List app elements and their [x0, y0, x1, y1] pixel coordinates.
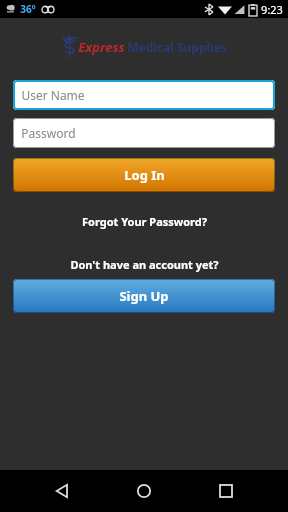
- staticText: Log In: [124, 166, 165, 184]
- button[interactable]: Sign Up: [13, 279, 275, 313]
- staticText: 9:23: [261, 2, 283, 17]
- button[interactable]: Home: [124, 471, 164, 511]
- button[interactable]: Recent apps: [206, 471, 246, 511]
- staticText: Password: [21, 125, 76, 141]
- button[interactable]: Log In: [13, 158, 275, 192]
- staticText: Sign Up: [119, 287, 169, 305]
- staticText: Express: [78, 38, 125, 56]
- staticText: 36°: [20, 2, 36, 16]
- staticText: Don't have an account yet?: [70, 257, 219, 272]
- button[interactable]: Forgot Your Password?: [74, 210, 215, 233]
- staticText: Medical Supplies: [127, 39, 227, 55]
- button[interactable]: Password: [13, 118, 275, 148]
- staticText: User Name: [21, 87, 85, 103]
- button[interactable]: Back: [42, 471, 82, 511]
- button[interactable]: User Name: [13, 80, 275, 110]
